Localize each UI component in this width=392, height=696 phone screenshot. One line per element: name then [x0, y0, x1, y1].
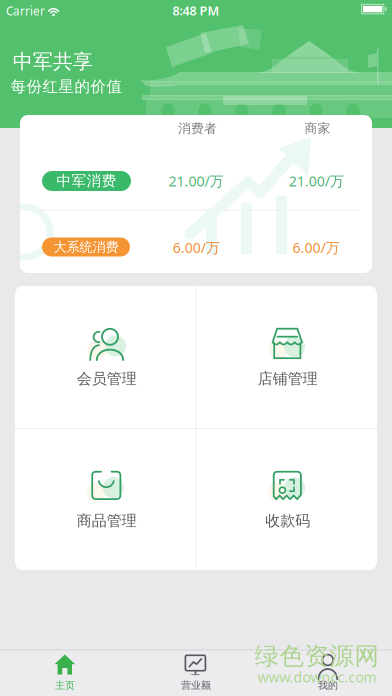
staticText: 中军共享 [13, 49, 93, 74]
staticText: 大系统消费 [53, 239, 118, 255]
button[interactable]: 会员管理 [15, 286, 196, 428]
staticText: Carrier [6, 3, 45, 19]
staticText: 每份红星的价值 [10, 77, 122, 96]
staticText: 21.00/万 [289, 171, 344, 191]
staticText: 6.00/万 [173, 238, 220, 257]
staticText: 营业额 [181, 679, 211, 692]
button[interactable]: 收款码 [196, 428, 377, 570]
staticText: 绿色资源网 [254, 641, 379, 671]
staticText: 我的 [318, 679, 338, 692]
button[interactable]: 我的 [263, 650, 392, 696]
button[interactable]: 主页 [0, 650, 130, 696]
staticText: 中军消费 [56, 172, 116, 190]
staticText: 消费者 [178, 120, 217, 136]
button[interactable]: 营业额 [131, 650, 261, 696]
staticText: 6.00/万 [292, 238, 339, 257]
staticText: 商品管理 [77, 511, 137, 530]
staticText: 店铺管理 [258, 369, 318, 388]
button[interactable]: 商品管理 [15, 428, 196, 570]
staticText: www.downcc.com [257, 667, 376, 687]
staticText: 21.00/万 [168, 171, 223, 191]
button[interactable]: 店铺管理 [196, 286, 377, 428]
staticText: 8:48 PM [172, 2, 219, 19]
staticText: 主页 [55, 679, 75, 692]
staticText: 会员管理 [77, 369, 137, 388]
staticText: 收款码 [265, 511, 310, 530]
staticText: 商家 [304, 120, 330, 136]
